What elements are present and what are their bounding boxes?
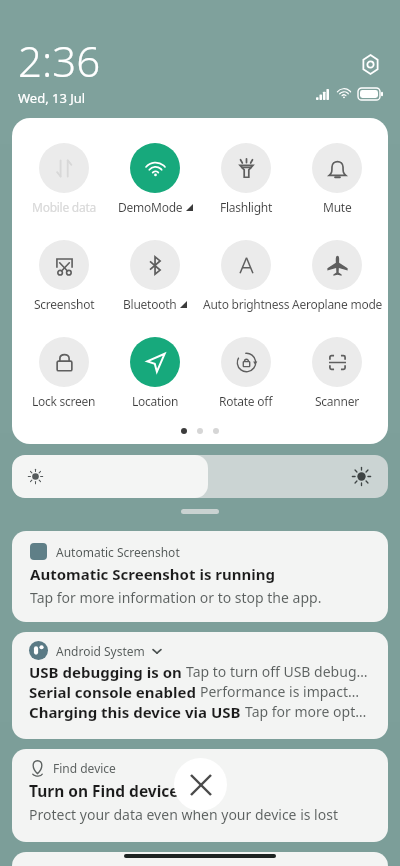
staticText: Serial console enabled <box>29 682 196 702</box>
button[interactable]: Android System <box>12 632 388 739</box>
staticText: Charging this device via USB <box>29 702 241 722</box>
button[interactable]: Automatic Screenshot <box>12 531 388 622</box>
staticText: Scanner <box>315 393 359 409</box>
staticText: Aeroplane mode <box>292 296 383 312</box>
staticText: Find device <box>53 760 116 776</box>
button[interactable]: Location <box>109 337 200 409</box>
staticText: Android System <box>56 643 145 659</box>
button[interactable]: Scanner <box>291 337 382 409</box>
staticText: Lock screen <box>32 393 96 409</box>
button[interactable]: Clear all notifications <box>174 758 227 811</box>
staticText: Automatic Screenshot <box>56 544 180 560</box>
staticText: 2:36 <box>18 32 101 89</box>
staticText: DemoMode <box>118 199 183 215</box>
staticText: Flashlight <box>220 199 273 215</box>
staticText: Screenshot <box>34 296 95 312</box>
staticText: Turn on Find device <box>29 780 179 801</box>
staticText: Auto brightness <box>203 296 290 312</box>
staticText: Performance is impact… <box>200 682 360 701</box>
staticText: Rotate off <box>219 393 273 409</box>
button[interactable]: Aeroplane mode <box>291 240 382 312</box>
button[interactable]: Flashlight <box>200 143 291 215</box>
staticText: Automatic Screenshot is running <box>30 564 275 584</box>
staticText: Mute <box>323 199 352 215</box>
button[interactable]: Auto brightness <box>200 240 291 312</box>
button[interactable]: Settings <box>356 50 384 78</box>
staticText: Tap for more information or to stop the … <box>30 588 322 607</box>
button[interactable]: Find device <box>12 749 388 842</box>
button[interactable]: Screenshot <box>18 240 109 312</box>
button[interactable]: Mobile data <box>18 143 109 215</box>
staticText: Location <box>132 393 179 409</box>
button[interactable]: DemoMode <box>109 143 200 215</box>
staticText: Wed, 13 Jul <box>18 89 86 107</box>
button[interactable]: Rotate off <box>200 337 291 409</box>
button[interactable]: Lock screen <box>18 337 109 409</box>
button[interactable]: Mute <box>291 143 382 215</box>
button[interactable]: Brightness <box>12 455 388 498</box>
button[interactable]: Bluetooth <box>109 240 200 312</box>
staticText: Tap for more opt… <box>245 702 367 721</box>
staticText: Bluetooth <box>123 296 177 312</box>
staticText: USB debugging is on <box>29 662 182 682</box>
staticText: Protect your data even when your device … <box>29 805 338 824</box>
staticText: Mobile data <box>32 199 97 215</box>
staticText: Tap to turn off USB debug… <box>186 662 368 681</box>
